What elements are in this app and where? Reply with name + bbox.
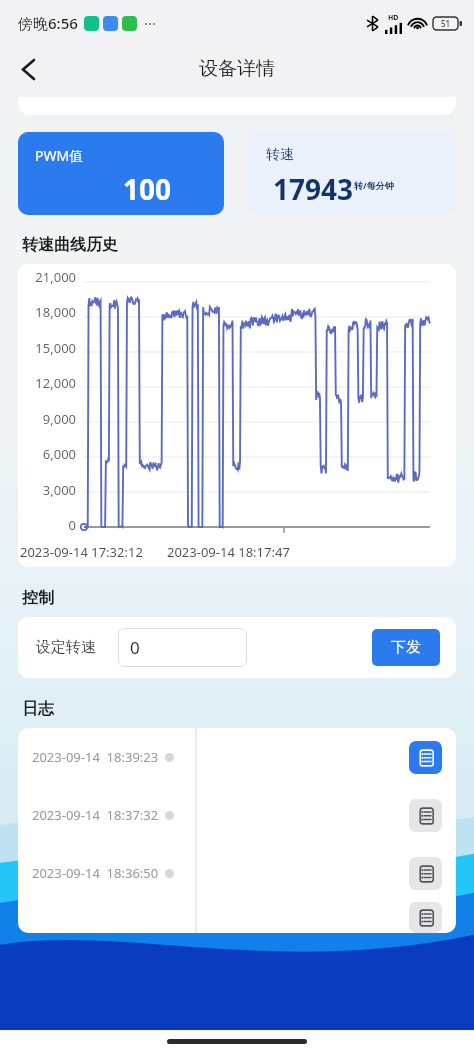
staticText: PWM值 xyxy=(35,146,84,165)
staticText: 日志 xyxy=(22,699,54,719)
staticText: 51 xyxy=(441,18,451,29)
staticText: 0 xyxy=(68,516,76,534)
staticText: 17943 xyxy=(273,170,354,208)
staticText: 2023-09-14 18:17:47 xyxy=(167,543,290,561)
button[interactable]: 2023-09-14 18:37:32 xyxy=(18,786,456,844)
staticText: 0 xyxy=(130,636,140,659)
button[interactable]: PWM值 xyxy=(18,132,224,215)
other: View log detail xyxy=(409,741,442,774)
staticText: 12,000 xyxy=(35,374,76,392)
staticText: 转速曲线历史 xyxy=(22,235,118,255)
staticText: 设定转速 xyxy=(36,638,96,657)
button[interactable]: View log detail xyxy=(18,902,456,933)
staticText: 18,000 xyxy=(35,303,76,321)
staticText: 下发 xyxy=(391,638,421,657)
button[interactable]: 0 xyxy=(118,628,247,667)
other: View log detail xyxy=(409,799,442,832)
button[interactable]: 2023-09-14 18:39:23 xyxy=(18,728,456,786)
staticText: 3,000 xyxy=(42,481,76,499)
staticText: 转/每分钟 xyxy=(354,179,394,191)
other: View log detail xyxy=(409,902,442,933)
staticText: 转速 xyxy=(266,146,294,164)
staticText: 2023-09-14 18:39:23 xyxy=(32,748,159,766)
staticText: 100 xyxy=(123,170,172,208)
staticText: ··· xyxy=(144,13,157,33)
staticText: 15,000 xyxy=(35,339,76,357)
staticText: 2023-09-14 18:36:50 xyxy=(32,864,159,882)
button[interactable]: 21,000 xyxy=(18,264,456,567)
staticText: 21,000 xyxy=(35,268,76,286)
staticText: 2023-09-14 18:37:32 xyxy=(32,806,159,824)
staticText: HD xyxy=(388,13,399,23)
other: View log detail xyxy=(409,857,442,890)
staticText: 傍晚6:56 xyxy=(18,13,78,33)
staticText: 2023-09-14 17:32:12 xyxy=(20,543,143,561)
staticText: 6,000 xyxy=(42,445,76,463)
staticText: 控制 xyxy=(22,588,54,608)
button[interactable]: Back xyxy=(8,49,48,89)
button[interactable]: 转速 xyxy=(249,132,456,215)
staticText: 9,000 xyxy=(42,410,76,428)
staticText: 设备详情 xyxy=(199,57,275,81)
button[interactable]: 下发 xyxy=(372,629,440,666)
button[interactable]: 2023-09-14 18:36:50 xyxy=(18,844,456,902)
